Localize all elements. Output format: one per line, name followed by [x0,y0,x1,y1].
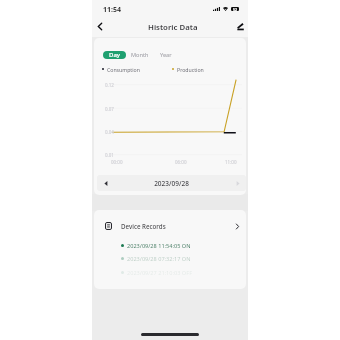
staticText: 0.01 [105,152,114,158]
button[interactable]: Edit [233,17,247,35]
staticText: 2023/09/28 07:32:17 ON [127,255,191,263]
button[interactable]: Next day [229,175,246,191]
staticText: 11:00 [225,159,237,165]
staticText: 06:00 [175,159,187,165]
button[interactable]: Month [131,51,149,59]
staticText: Device Records [121,222,166,230]
staticText: Historic Data [148,22,198,33]
button[interactable]: Year [158,51,174,59]
staticText: 11:54 [103,5,121,15]
staticText: 2023/09/27 21:10:03 OFF [127,269,193,277]
staticText: 0.07 [105,106,114,112]
staticText: Month [131,51,149,59]
button[interactable]: Day [103,51,126,59]
staticText: 2023/09/28 [114,179,229,188]
button[interactable]: Previous day [97,175,114,191]
button[interactable]: Back [93,17,107,35]
staticText: Year [160,51,172,59]
staticText: Day [109,51,120,59]
staticText: 2023/09/28 11:54:05 ON [127,242,191,250]
staticText: Consumption [107,66,140,73]
staticText: Production [177,66,204,73]
button[interactable]: Device Records [94,216,246,235]
staticText: 0.04 [105,129,114,135]
staticText: 00:00 [111,159,123,165]
staticText: 0.12 [105,82,114,88]
staticText: 52 [233,7,238,11]
